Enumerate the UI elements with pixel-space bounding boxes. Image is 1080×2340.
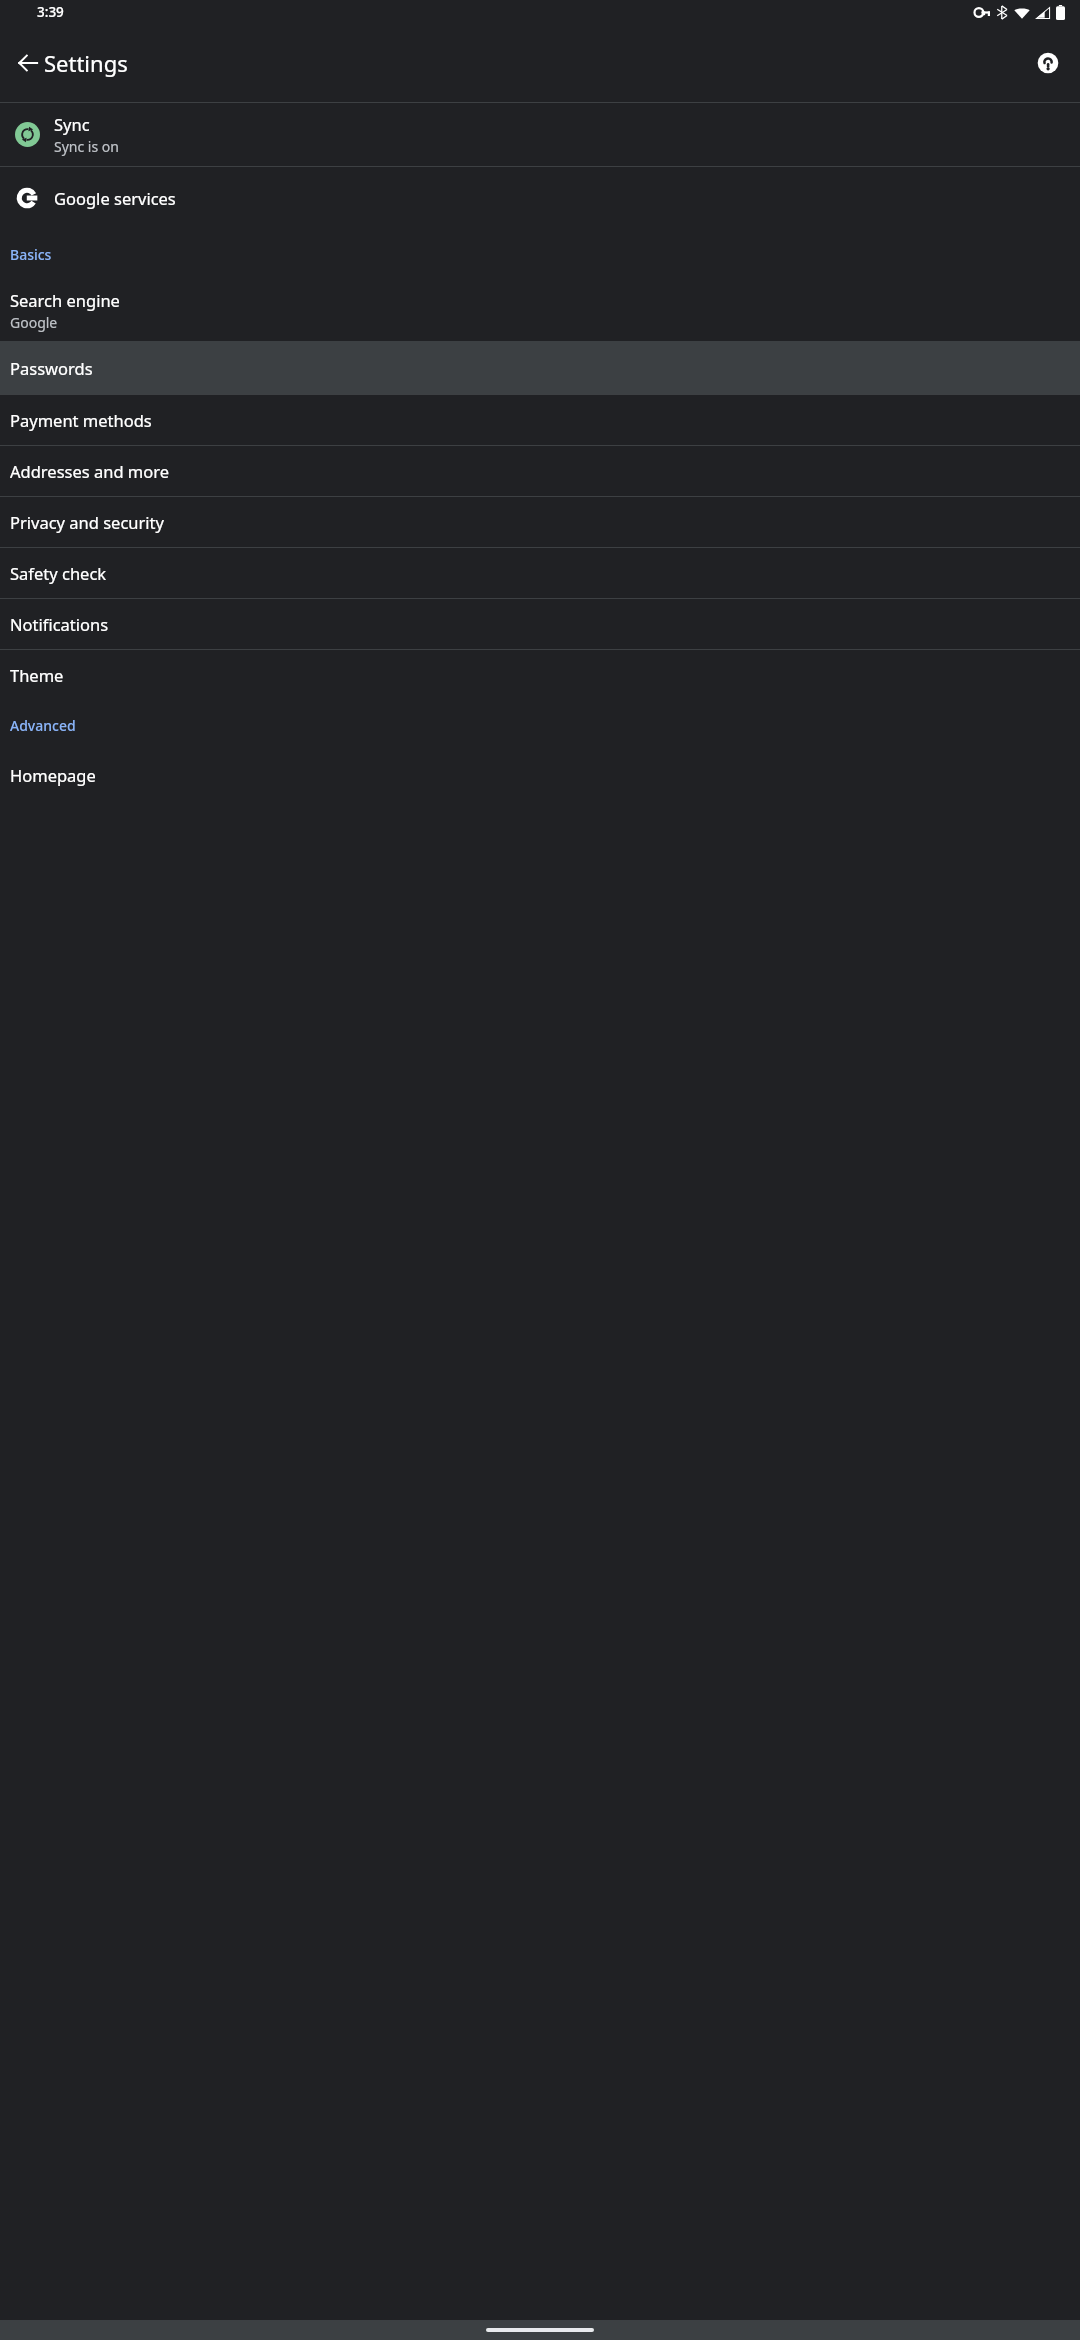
staticText: Privacy and security [10,511,164,533]
staticText: Sync [54,113,90,135]
button[interactable]: Homepage [0,750,1080,800]
staticText: Theme [10,664,64,686]
button[interactable]: Payment methods [0,395,1080,445]
staticText: Advanced [10,716,76,735]
button[interactable]: Navigate up [4,39,52,87]
button[interactable]: Notifications [0,599,1080,649]
button[interactable]: Sync [0,103,1080,166]
staticText: Search engine [10,289,120,311]
button[interactable]: Privacy and security [0,497,1080,547]
staticText: Google services [54,187,176,209]
staticText: Settings [44,48,128,78]
staticText: Google [10,313,58,332]
staticText: Homepage [10,764,96,786]
staticText: Basics [10,245,52,264]
button[interactable]: Help and feedback [1024,39,1072,87]
staticText: Safety check [10,562,107,584]
button[interactable]: Theme [0,650,1080,700]
staticText: Addresses and more [10,460,170,482]
staticText: Notifications [10,613,109,635]
staticText: Payment methods [10,409,152,431]
button[interactable]: Safety check [0,548,1080,598]
button[interactable]: Google services [0,167,1080,229]
button[interactable]: Passwords [0,341,1080,394]
staticText: Sync is on [54,137,119,156]
staticText: Passwords [10,357,93,379]
button[interactable]: Search engine [0,279,1080,341]
button[interactable]: Addresses and more [0,446,1080,496]
staticText: 3:39 [37,3,64,21]
